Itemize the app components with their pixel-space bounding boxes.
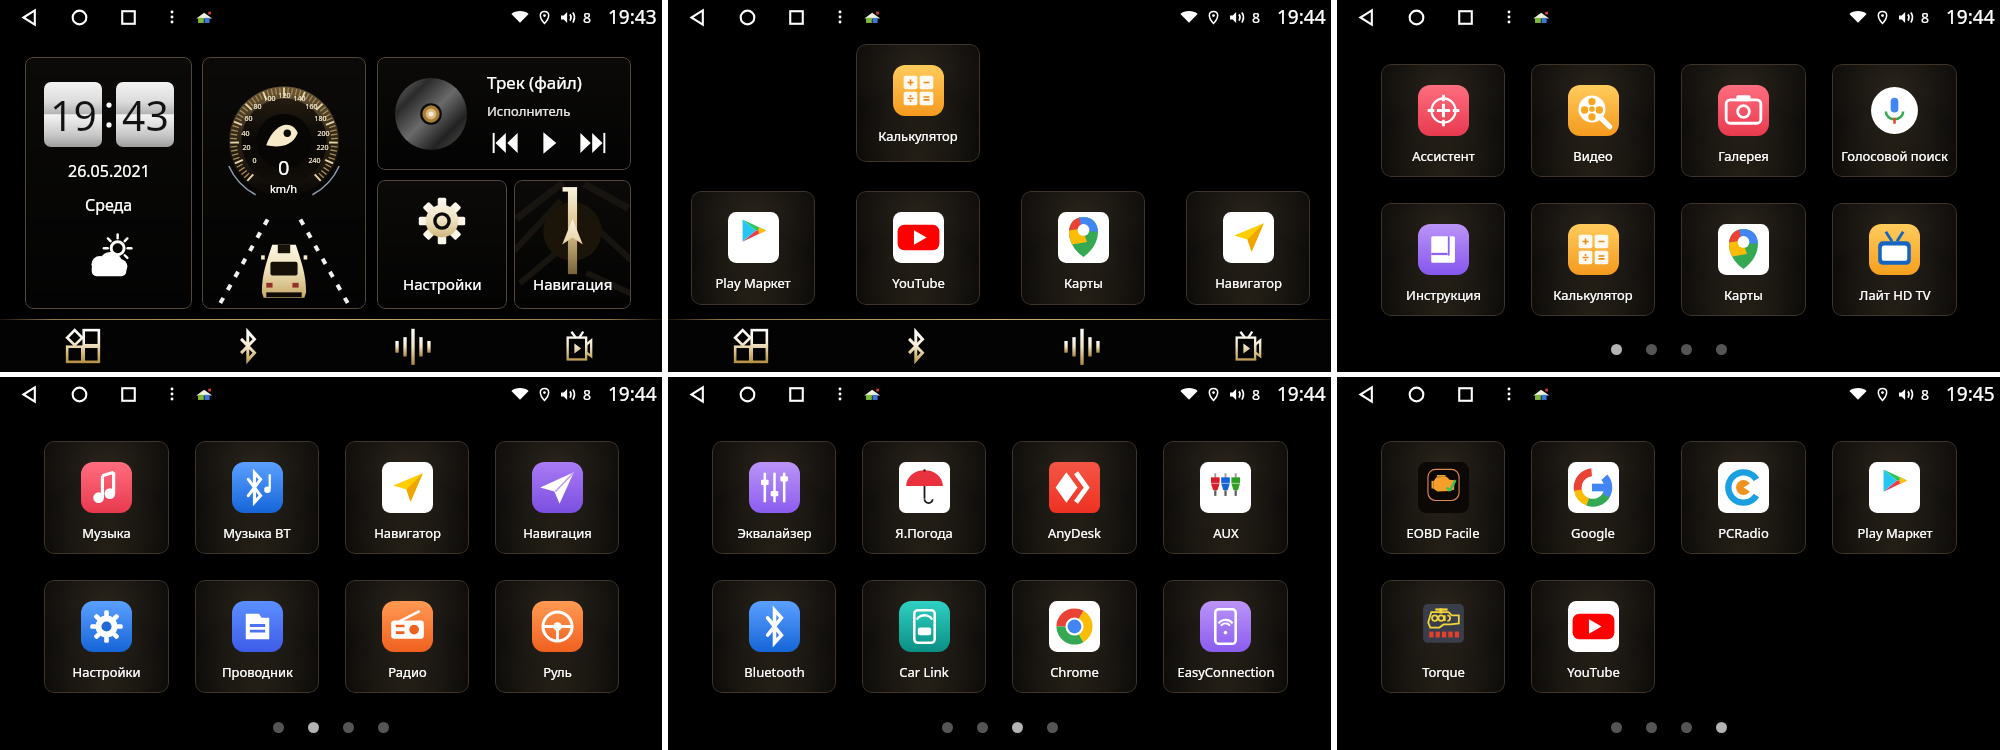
button[interactable]: Launcher [859, 381, 885, 407]
button[interactable]: Equalizer [330, 320, 496, 372]
button[interactable]: Back [1351, 2, 1381, 32]
button[interactable]: Page 2 [308, 722, 319, 733]
button[interactable]: Page 4 [1047, 722, 1058, 733]
button[interactable]: Home [732, 2, 762, 32]
button[interactable]: Launcher [191, 381, 217, 407]
button[interactable]: Video [496, 320, 662, 372]
button[interactable]: Page 3 [343, 722, 354, 733]
button[interactable]: Back [14, 2, 44, 32]
button[interactable]: Launcher [1528, 381, 1554, 407]
button[interactable]: Page 1 [273, 722, 284, 733]
button[interactable]: Видео [1531, 64, 1655, 177]
button[interactable]: Page 2 [977, 722, 988, 733]
button[interactable]: More options [827, 381, 853, 407]
button[interactable]: Back [1351, 379, 1381, 409]
button[interactable]: More options [1496, 4, 1522, 30]
button[interactable]: Page 3 [1681, 722, 1692, 733]
button[interactable]: Home [1401, 2, 1431, 32]
button[interactable]: Инструкция [1381, 203, 1505, 316]
button[interactable]: Back [14, 379, 44, 409]
button[interactable]: Я.Погода [862, 441, 986, 554]
button[interactable]: Recents [1450, 2, 1480, 32]
button[interactable]: Page 4 [1716, 344, 1727, 355]
button[interactable]: Recents [781, 379, 811, 409]
button[interactable]: PCRadio [1681, 441, 1806, 554]
button[interactable]: Bluetooth [833, 320, 999, 372]
button[interactable]: Page 1 [1611, 722, 1622, 733]
button[interactable]: EasyConnection [1163, 580, 1288, 693]
button[interactable]: Recents [113, 2, 143, 32]
button[interactable]: Калькулятор [1531, 203, 1655, 316]
button[interactable]: Play Маркет [1832, 441, 1957, 554]
button[interactable]: Навигация [514, 180, 631, 309]
button[interactable]: Home [64, 379, 94, 409]
button[interactable]: Recents [1450, 379, 1480, 409]
button[interactable]: Play [531, 125, 567, 161]
button[interactable]: Лайт HD TV [1832, 203, 1957, 316]
button[interactable]: Навигатор [345, 441, 469, 554]
button[interactable]: Google [1531, 441, 1655, 554]
button[interactable]: More options [159, 381, 185, 407]
button[interactable]: Page 1 [1611, 344, 1622, 355]
button[interactable]: Карты [1681, 203, 1806, 316]
button[interactable]: Руль [495, 580, 619, 693]
button[interactable]: Home [1401, 379, 1431, 409]
button[interactable]: Recents [781, 2, 811, 32]
button[interactable]: Page 3 [1012, 722, 1023, 733]
button[interactable]: Launcher [859, 4, 885, 30]
button[interactable]: Chrome [1012, 580, 1137, 693]
button[interactable]: Настройки [377, 180, 507, 309]
button[interactable]: Page 2 [1646, 344, 1657, 355]
button[interactable]: Page 1 [942, 722, 953, 733]
button[interactable]: AnyDesk [1012, 441, 1137, 554]
button[interactable]: Настройки [44, 580, 169, 693]
button[interactable]: Back [682, 379, 712, 409]
button[interactable]: Video [1165, 320, 1331, 372]
button[interactable]: Home [64, 2, 94, 32]
button[interactable]: Home [732, 379, 762, 409]
button[interactable]: Page 4 [378, 722, 389, 733]
button[interactable]: Трек (файл) [377, 57, 631, 170]
button[interactable]: YouTube [856, 191, 980, 305]
button[interactable]: 19 [25, 57, 192, 309]
button[interactable]: Next track [575, 125, 611, 161]
button[interactable]: Apps [0, 320, 165, 372]
button[interactable]: Музыка BT [195, 441, 319, 554]
button[interactable]: Навигация [495, 441, 619, 554]
staticText: 80 [253, 102, 262, 112]
button[interactable]: Ассистент [1381, 64, 1505, 177]
button[interactable]: Галерея [1681, 64, 1806, 177]
button[interactable]: More options [827, 4, 853, 30]
button[interactable]: Музыка [44, 441, 169, 554]
button[interactable]: Play Маркет [691, 191, 815, 305]
button[interactable]: Page 4 [1716, 722, 1727, 733]
button[interactable]: AUX [1163, 441, 1288, 554]
button[interactable]: YouTube [1531, 580, 1655, 693]
button[interactable]: Page 3 [1681, 344, 1692, 355]
staticText: 240 [308, 156, 321, 166]
button[interactable]: Голосовой поиск [1832, 64, 1957, 177]
button[interactable]: More options [159, 4, 185, 30]
button[interactable]: Эквалайзер [712, 441, 836, 554]
button[interactable]: Torque [1381, 580, 1505, 693]
staticText: Галерея [1718, 147, 1769, 165]
button[interactable]: Карты [1021, 191, 1145, 305]
button[interactable]: Проводник [195, 580, 319, 693]
button[interactable]: Previous track [487, 125, 523, 161]
button[interactable]: Equalizer [999, 320, 1165, 372]
button[interactable]: Car Link [862, 580, 986, 693]
button[interactable]: Bluetooth [165, 320, 330, 372]
button[interactable]: Recents [113, 379, 143, 409]
button[interactable]: EOBD Facile [1381, 441, 1505, 554]
button[interactable]: Калькулятор [856, 44, 980, 162]
button[interactable]: Launcher [191, 4, 217, 30]
button[interactable]: Page 2 [1646, 722, 1657, 733]
button[interactable]: Радио [345, 580, 469, 693]
button[interactable]: Навигатор [1186, 191, 1310, 305]
button[interactable]: 0 [202, 57, 366, 309]
button[interactable]: Launcher [1528, 4, 1554, 30]
button[interactable]: Apps [668, 320, 833, 372]
button[interactable]: More options [1496, 381, 1522, 407]
button[interactable]: Bluetooth [712, 580, 836, 693]
button[interactable]: Back [682, 2, 712, 32]
